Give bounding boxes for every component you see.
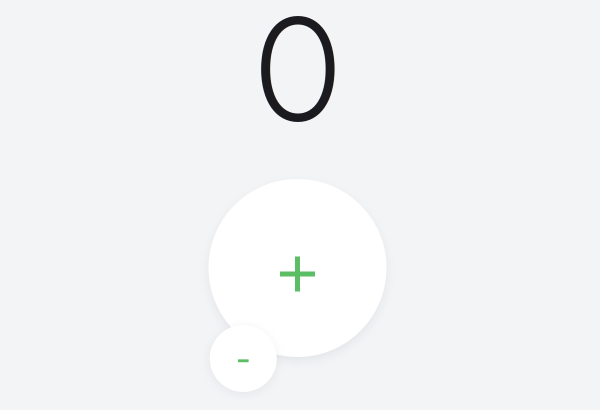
button[interactable]: Decrement [210,325,277,392]
staticText: 0 [255,0,340,155]
button[interactable]: Increment [208,179,386,357]
